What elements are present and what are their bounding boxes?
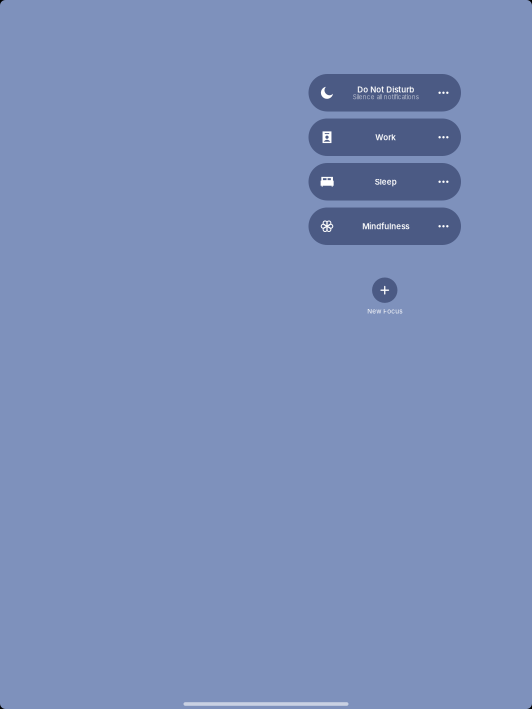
staticText: New Focus xyxy=(367,307,402,315)
staticText: Silence all notifications xyxy=(353,93,419,101)
staticText: Mindfulness xyxy=(362,221,409,231)
button[interactable]: New Focus xyxy=(308,277,461,315)
button[interactable]: Do Not Disturb xyxy=(308,74,461,111)
button[interactable]: Sleep xyxy=(308,163,461,200)
button[interactable]: Work xyxy=(308,118,461,156)
staticText: Sleep xyxy=(375,177,397,187)
staticText: Work xyxy=(375,132,396,142)
button[interactable]: Mindfulness xyxy=(308,207,461,245)
staticText: Do Not Disturb xyxy=(357,85,414,94)
